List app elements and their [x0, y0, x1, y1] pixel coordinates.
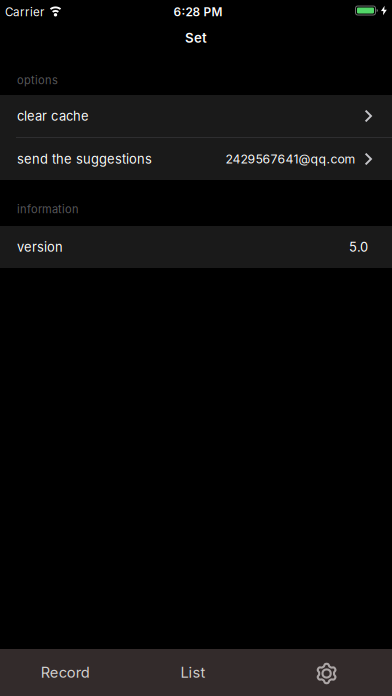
staticText: 6:28 PM	[173, 5, 222, 19]
staticText: Record	[41, 664, 90, 681]
staticText: List	[180, 664, 205, 681]
button[interactable]: Set	[261, 649, 392, 696]
button[interactable]: clear cache	[0, 95, 392, 137]
staticText: Set	[185, 30, 207, 46]
staticText: Carrier	[5, 5, 44, 19]
button[interactable]: send the suggestions	[0, 138, 392, 180]
staticText: clear cache	[17, 108, 89, 124]
staticText: information	[17, 203, 79, 216]
button[interactable]: Record	[0, 649, 131, 696]
staticText: 2429567641@qq.com	[226, 152, 356, 166]
button[interactable]: version	[0, 226, 392, 268]
staticText: 5.0	[349, 239, 368, 255]
button[interactable]: List	[131, 649, 261, 696]
staticText: send the suggestions	[17, 151, 152, 167]
staticText: options	[17, 74, 58, 87]
staticText: version	[17, 239, 63, 255]
